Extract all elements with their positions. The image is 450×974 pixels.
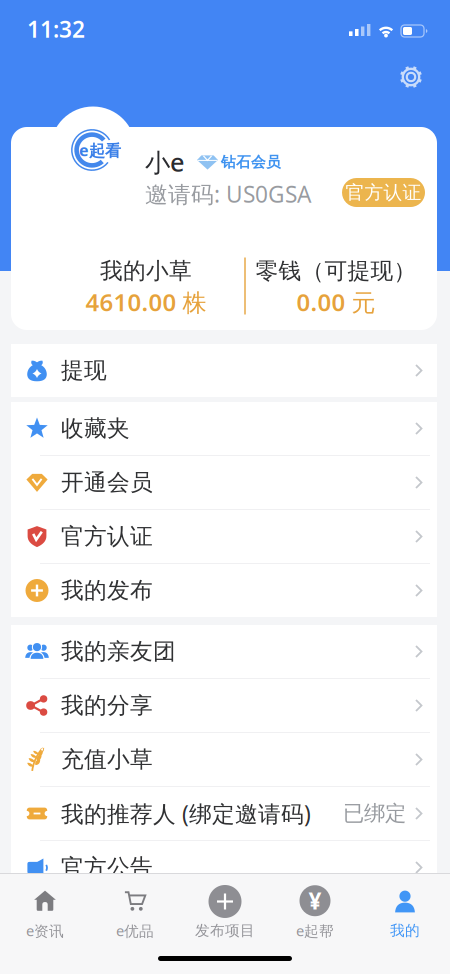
staticText: 邀请码: US0GSA	[145, 179, 311, 209]
staticText: 开通会员	[61, 469, 153, 496]
button[interactable]: Settings	[391, 57, 431, 97]
staticText: 收藏夹	[61, 415, 130, 442]
button[interactable]: 我的分享	[11, 679, 437, 732]
staticText: 零钱（可提现）	[255, 257, 416, 285]
staticText: 充值小草	[61, 746, 153, 773]
button[interactable]: 我的	[360, 874, 450, 952]
staticText: 11:32	[27, 14, 85, 44]
button[interactable]: 我的亲友团	[11, 625, 437, 678]
staticText: 0.00 元	[296, 286, 375, 318]
button[interactable]: e资讯	[0, 874, 90, 952]
button[interactable]: 官方认证	[342, 178, 425, 207]
staticText: e起帮	[296, 921, 334, 940]
button[interactable]: 我的发布	[11, 564, 437, 617]
staticText: 我的	[390, 921, 420, 939]
button[interactable]: 开通会员	[11, 456, 437, 509]
staticText: ¥	[308, 886, 321, 916]
button[interactable]: 官方认证	[11, 510, 437, 563]
staticText: 钻石会员	[221, 153, 281, 171]
button[interactable]: ¥	[270, 874, 360, 952]
button[interactable]: 官方公告	[11, 841, 437, 894]
button[interactable]: 提现	[11, 344, 437, 397]
staticText: 官方认证	[61, 523, 153, 550]
button[interactable]: 收藏夹	[11, 402, 437, 455]
staticText: 我的发布	[61, 577, 153, 604]
staticText: 官方公告	[61, 854, 153, 881]
staticText: 4610.00 株	[85, 286, 206, 318]
staticText: 官方认证	[345, 181, 421, 204]
staticText: 发布项目	[195, 921, 255, 939]
button[interactable]: 零钱（可提现）	[226, 256, 446, 318]
staticText: 我的分享	[61, 692, 153, 719]
button[interactable]: e优品	[90, 874, 180, 952]
button[interactable]: 我的小草	[46, 256, 246, 318]
staticText: 我的小草	[100, 257, 192, 285]
staticText: e优品	[116, 921, 154, 940]
button[interactable]: 发布项目	[180, 874, 270, 952]
staticText: 已绑定	[343, 800, 406, 827]
staticText: 我的亲友团	[61, 638, 176, 665]
staticText: e资讯	[26, 921, 64, 940]
button[interactable]: 充值小草	[11, 733, 437, 786]
button[interactable]: 我的推荐人 (绑定邀请码)	[11, 787, 437, 840]
staticText: 提现	[61, 357, 107, 384]
staticText: 小e	[145, 145, 185, 179]
staticText: 我的推荐人 (绑定邀请码)	[61, 798, 311, 828]
staticText: e起看	[79, 139, 121, 161]
